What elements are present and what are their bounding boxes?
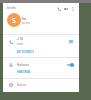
staticText: last seen (22, 21, 30, 25)
button[interactable]: +1 555 (3, 36, 79, 50)
button[interactable]: Video call (62, 5, 69, 12)
button[interactable]: User Info (5, 5, 20, 10)
button[interactable]: S (3, 10, 79, 31)
button[interactable]: Block user (3, 79, 79, 90)
button[interactable]: Send message (69, 40, 73, 44)
button[interactable]: More options (69, 5, 76, 12)
staticText: S (12, 16, 16, 25)
staticText: Kim (22, 16, 26, 21)
button[interactable]: Call (55, 5, 62, 12)
staticText: Notifications (17, 62, 29, 66)
staticText: User Info (6, 5, 16, 10)
staticText: mobile (17, 42, 23, 46)
staticText: +1 555 (17, 37, 23, 41)
staticText: Block user (17, 82, 27, 86)
button[interactable]: ADD TO CONTACTS (3, 48, 79, 57)
staticText: ADD TO CONTACTS (17, 50, 34, 54)
staticText: SHARED MEDIA (17, 70, 30, 74)
button[interactable]: Notifications (3, 59, 79, 71)
button[interactable]: SHARED MEDIA (3, 68, 79, 77)
